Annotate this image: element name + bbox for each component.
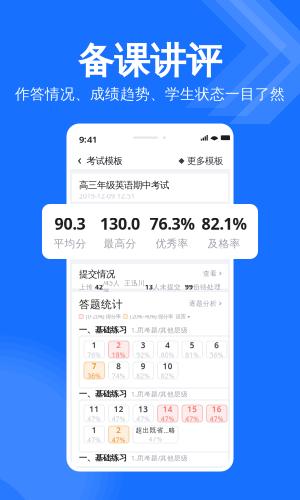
staticText: 2 <box>116 340 121 350</box>
staticText: 82% <box>136 371 150 380</box>
staticText: 11 <box>89 404 99 414</box>
staticText: 47% <box>87 414 101 423</box>
staticText: 76% <box>87 350 101 359</box>
staticText: 42 <box>95 283 103 291</box>
staticText: 考试模板 <box>86 155 122 167</box>
staticText: 4 <box>165 340 170 350</box>
staticText: 作答情况、成绩趋势、学生状态一目了然 <box>15 85 285 103</box>
staticText: 一、基础练习 <box>79 389 127 399</box>
button[interactable]: 更多模板 <box>172 152 230 170</box>
staticText: 6 <box>214 340 219 350</box>
staticText: [0-20%] 得分率 <box>86 313 121 320</box>
staticText: 92% <box>136 350 150 359</box>
staticText: 超出既省…略 <box>135 426 175 434</box>
staticText: 2019-12-09 12:51 <box>79 191 135 200</box>
staticText: 1.思考题/其他层级 <box>131 325 188 334</box>
staticText: 16 <box>212 404 222 414</box>
staticText: 上传 <box>79 283 95 291</box>
staticText: 76.3% <box>149 213 194 234</box>
staticText: 82% <box>161 371 175 380</box>
staticText: 8 <box>116 361 121 371</box>
staticText: 18% <box>112 350 126 359</box>
staticText: 设置 ▾ <box>175 313 190 320</box>
staticText: 9:41 <box>79 133 97 145</box>
button[interactable]: 查看 <box>194 268 228 279</box>
staticText: 份待处理 <box>193 283 221 291</box>
staticText: 逐题分析 <box>189 299 217 308</box>
staticText: 1 <box>92 340 97 350</box>
staticText: 99 <box>185 283 193 291</box>
staticText: 1 <box>92 425 97 435</box>
staticText: 47% <box>148 434 162 443</box>
staticText: 81% <box>185 350 199 359</box>
staticText: 47% <box>185 414 199 423</box>
staticText: 2 <box>116 425 121 435</box>
staticText: 74% <box>112 371 126 380</box>
staticText: 47% <box>161 414 175 423</box>
staticText: 5 <box>190 340 195 350</box>
staticText: 答题统计 <box>79 298 123 311</box>
staticText: 1.思考题/其他层级 <box>131 453 188 462</box>
staticText: 平均分 <box>53 237 86 250</box>
staticText: 3 <box>141 340 146 350</box>
staticText: 10 <box>163 361 173 371</box>
staticText: 备课讲评 <box>78 39 222 83</box>
staticText: 14 <box>163 404 173 414</box>
button[interactable]: 逐题分析 <box>186 298 228 309</box>
button[interactable]: 考试模板 <box>70 152 128 170</box>
staticText: 高三年级英语期中考试 <box>79 179 169 191</box>
staticText: 56% <box>210 350 224 359</box>
staticText: 9 <box>141 361 146 371</box>
staticText: 更多模板 <box>187 155 223 167</box>
staticText: 最高分 <box>103 237 136 250</box>
staticText: 优秀率 <box>155 237 188 250</box>
staticText: 47% <box>112 414 126 423</box>
staticText: 1.思考题/其他层级 <box>131 389 188 398</box>
staticText: 一、基础练习 <box>79 453 127 463</box>
staticText: 7 <box>92 361 97 371</box>
staticText: 82.1% <box>201 213 246 234</box>
staticText: 47% <box>112 435 126 444</box>
staticText: /45人 王迅川等 <box>103 278 145 295</box>
staticText: 130.0 <box>100 213 140 234</box>
staticText: 12 <box>114 404 124 414</box>
staticText: 80% <box>161 350 175 359</box>
staticText: (20%~40%] 得分率 <box>130 313 173 320</box>
staticText: 13 <box>138 404 148 414</box>
staticText: 47% <box>136 414 150 423</box>
staticText: 47% <box>87 435 101 444</box>
staticText: 15 <box>187 404 197 414</box>
staticText: 人未提交 <box>153 283 185 291</box>
staticText: 查看 <box>203 269 217 278</box>
staticText: 90.3 <box>54 213 85 234</box>
staticText: 一、基础练习 <box>79 325 127 335</box>
staticText: 提交情况 <box>79 268 115 280</box>
staticText: 及格率 <box>207 237 240 250</box>
staticText: 36% <box>87 371 101 380</box>
staticText: 13 <box>145 283 153 291</box>
staticText: 47% <box>210 414 224 423</box>
